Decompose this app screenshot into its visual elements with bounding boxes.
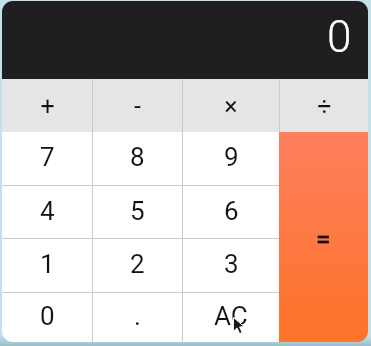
staticText: +: [40, 92, 55, 121]
staticText: AC: [214, 301, 248, 331]
button[interactable]: 3: [183, 239, 279, 292]
staticText: 0: [40, 301, 55, 331]
staticText: =: [316, 224, 331, 254]
staticText: 7: [40, 142, 55, 172]
button[interactable]: 1: [2, 239, 92, 292]
staticText: 5: [130, 196, 145, 226]
button[interactable]: 6: [183, 186, 279, 238]
button[interactable]: =: [279, 132, 368, 342]
staticText: ÷: [317, 92, 332, 121]
staticText: ×: [224, 92, 238, 121]
staticText: .: [134, 301, 141, 331]
button[interactable]: 0: [2, 293, 92, 342]
button[interactable]: Plus: [2, 79, 92, 132]
staticText: 6: [224, 196, 239, 226]
button[interactable]: 4: [2, 186, 92, 238]
staticText: 0: [327, 11, 352, 63]
button[interactable]: 8: [93, 132, 182, 185]
staticText: 4: [40, 196, 55, 226]
button[interactable]: Minus: [93, 79, 182, 132]
staticText: 2: [130, 249, 145, 279]
button[interactable]: 5: [93, 186, 182, 238]
button[interactable]: .: [93, 293, 182, 342]
button[interactable]: Divide: [280, 79, 368, 132]
button[interactable]: AC: [183, 293, 279, 342]
button[interactable]: 9: [183, 132, 279, 185]
staticText: 1: [40, 249, 55, 279]
staticText: 8: [130, 142, 145, 172]
staticText: -: [134, 92, 141, 121]
button[interactable]: 2: [93, 239, 182, 292]
staticText: 9: [224, 142, 239, 172]
button[interactable]: 7: [2, 132, 92, 185]
staticText: 3: [224, 249, 239, 279]
button[interactable]: Multiply: [183, 79, 279, 132]
